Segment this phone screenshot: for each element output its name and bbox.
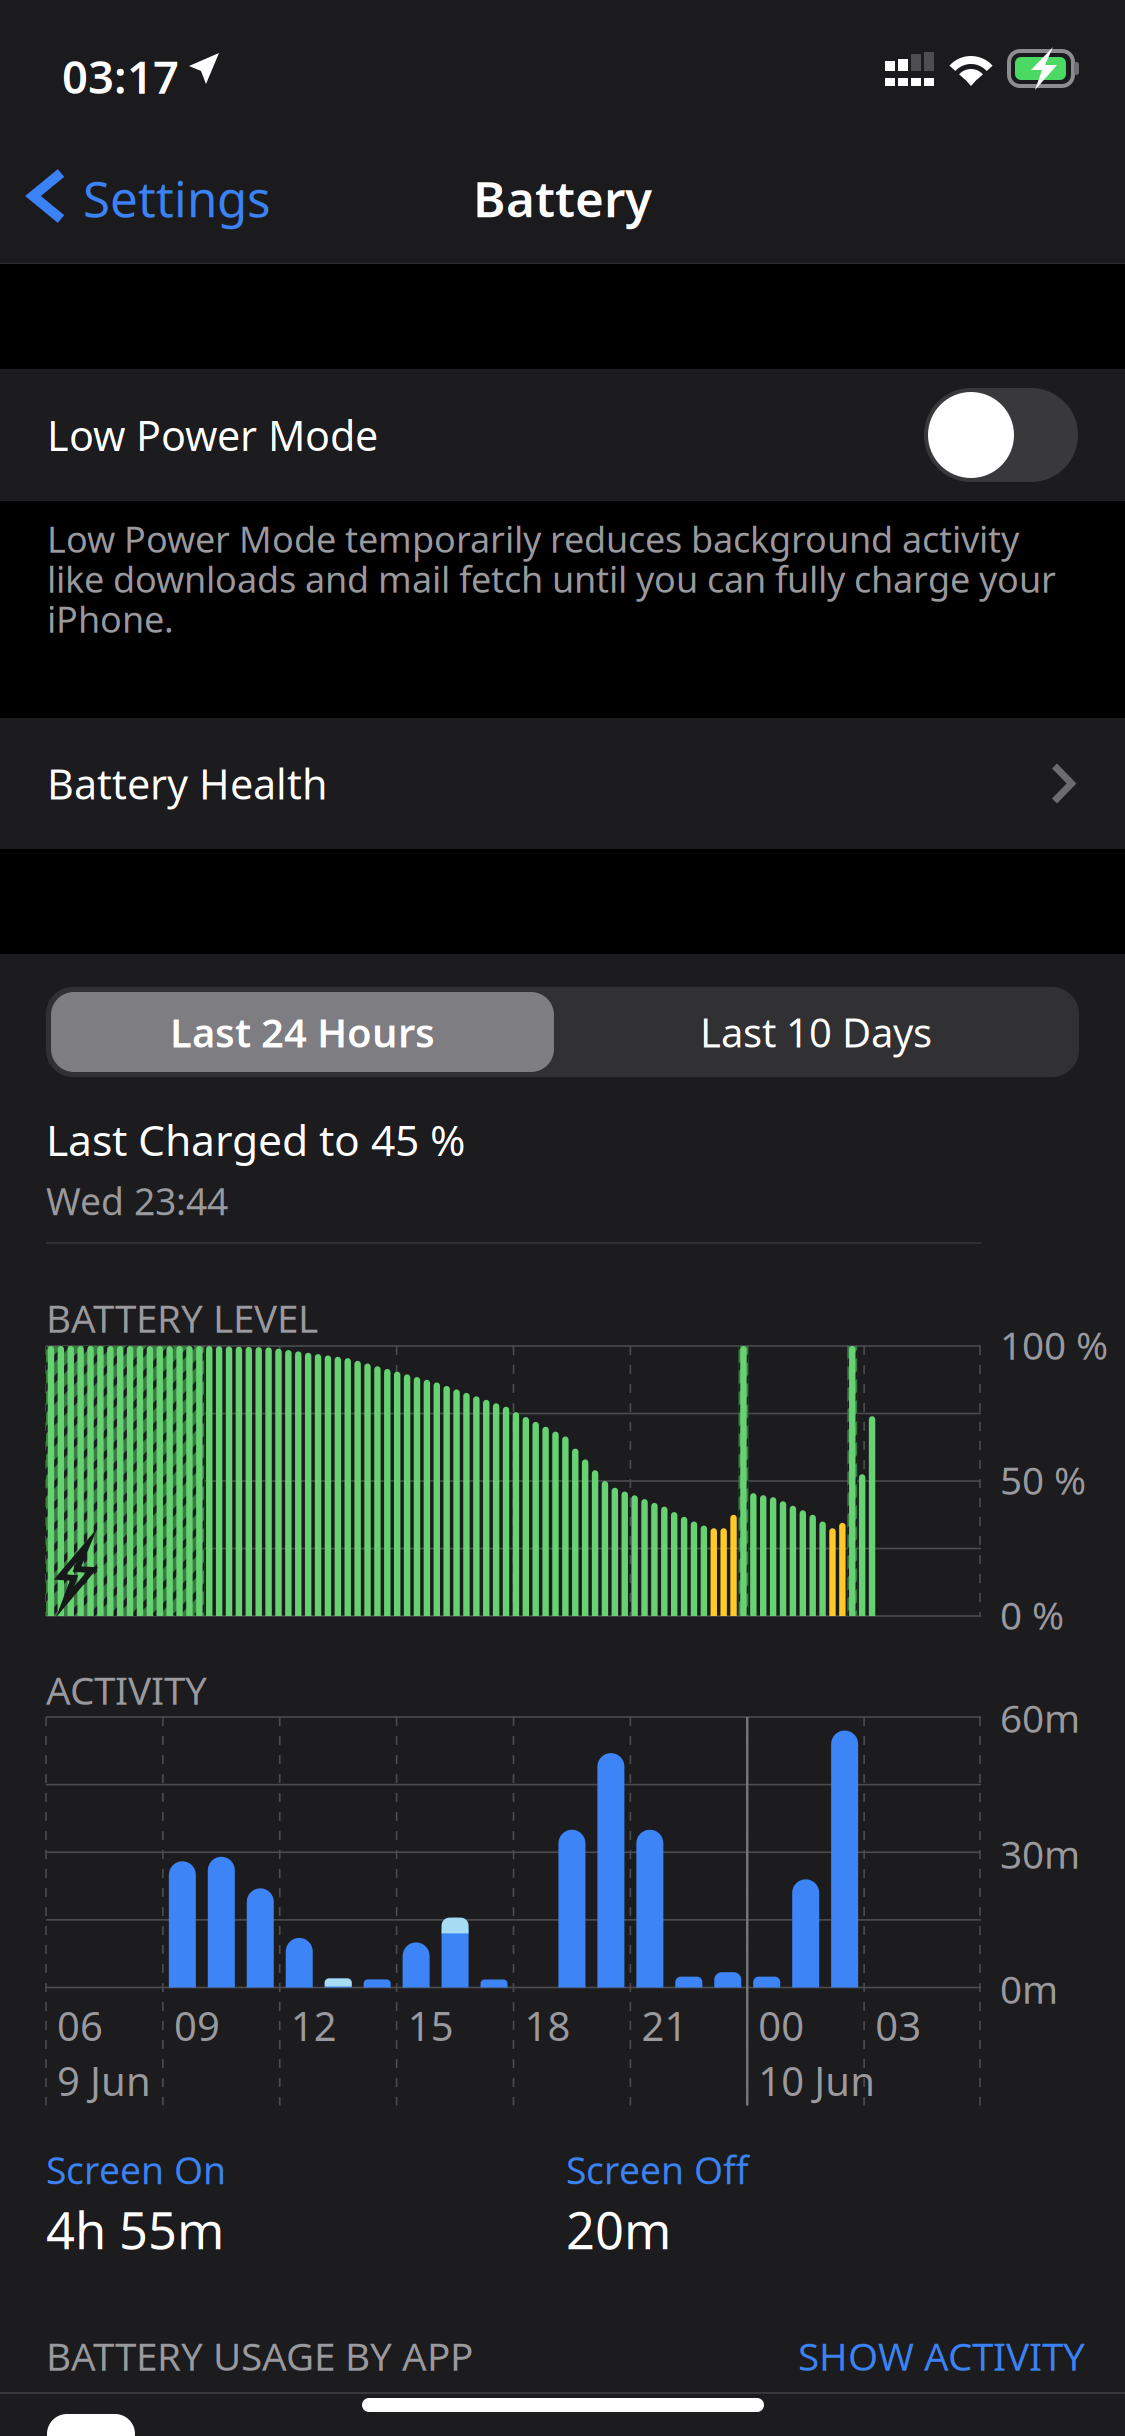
staticText: Battery [473, 165, 652, 231]
staticText: 20m [566, 2196, 671, 2263]
staticText: 0m [1000, 1963, 1058, 2014]
staticText: 100 % [1000, 1319, 1108, 1370]
staticText: Last 24 Hours [170, 1005, 435, 1058]
staticText: 60m [1000, 1692, 1080, 1743]
staticText: iPhone. [47, 595, 174, 643]
button[interactable]: Settings [0, 132, 420, 264]
staticText: 06 [57, 1999, 103, 2052]
staticText: BATTERY LEVEL [46, 1292, 318, 1343]
staticText: 50 % [1000, 1454, 1086, 1505]
button[interactable]: SHOW ACTIVITY [798, 2330, 1085, 2381]
staticText: Screen Off [566, 2145, 749, 2195]
staticText: 10 Jun [758, 2054, 875, 2107]
staticText: Battery Health [47, 756, 328, 811]
staticText: 09 [174, 1999, 220, 2052]
staticText: 00 [758, 1999, 804, 2052]
staticText: Screen On [46, 2145, 226, 2195]
staticText: 9 Jun [57, 2054, 151, 2107]
staticText: Settings [83, 165, 271, 231]
staticText: 30m [1000, 1828, 1080, 1879]
staticText: SHOW ACTIVITY [798, 2330, 1085, 2381]
staticText: 03 [875, 1999, 921, 2052]
staticText: Wed 23:44 [46, 1176, 228, 1226]
staticText: Low Power Mode [47, 408, 378, 462]
staticText: BATTERY USAGE BY APP [46, 2330, 473, 2381]
staticText: Low Power Mode temporarily reduces backg… [47, 515, 1019, 563]
staticText: Last 10 Days [700, 1005, 932, 1058]
staticText: like downloads and mail fetch until you … [47, 555, 1056, 603]
staticText: 18 [524, 1999, 570, 2052]
button[interactable]: Low Power Mode [0, 369, 1125, 501]
staticText: ACTIVITY [46, 1664, 207, 1715]
button[interactable]: Battery Health [0, 718, 1125, 849]
button[interactable]: Last 24 Hours [51, 992, 554, 1072]
staticText: 12 [291, 1999, 337, 2052]
staticText: 21 [641, 1999, 687, 2052]
staticText: 03:17 [62, 46, 179, 106]
staticText: 4h 55m [46, 2196, 224, 2263]
staticText: 0 % [1000, 1589, 1064, 1640]
staticText: 15 [408, 1999, 454, 2052]
staticText: Last Charged to 45 % [46, 1111, 465, 1168]
button[interactable]: Last 10 Days [556, 992, 1076, 1072]
